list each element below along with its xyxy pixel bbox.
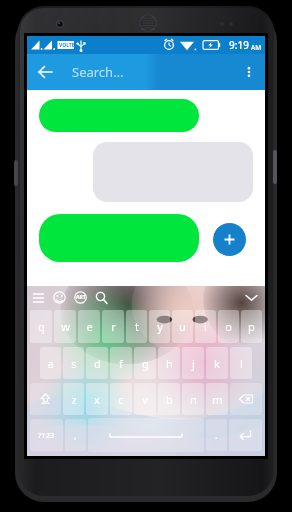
button[interactable]: Space — [88, 418, 204, 452]
button[interactable]: s — [63, 347, 84, 379]
button[interactable]: More options — [236, 59, 262, 85]
staticText: w — [61, 319, 70, 334]
staticText: , — [74, 429, 77, 441]
button[interactable]: Enter — [229, 419, 262, 451]
button[interactable]: n — [182, 383, 204, 415]
button[interactable]: r — [102, 310, 124, 343]
button[interactable]: Search — [95, 291, 108, 304]
button[interactable]: h — [158, 347, 180, 379]
staticText: u — [179, 319, 186, 334]
button[interactable]: q — [30, 310, 52, 343]
button[interactable]: Backspace — [230, 383, 262, 415]
staticText: b — [166, 392, 173, 407]
button[interactable]: ART — [74, 291, 87, 304]
button[interactable]: z — [63, 383, 84, 415]
staticText: d — [94, 356, 101, 371]
staticText: s — [71, 356, 77, 371]
button[interactable] — [39, 214, 199, 262]
button[interactable]: w — [54, 310, 76, 343]
button[interactable]: u — [172, 310, 193, 343]
button[interactable]: c — [110, 383, 132, 415]
staticText: x — [94, 392, 100, 407]
button[interactable]: o — [218, 310, 239, 343]
staticText: r — [111, 319, 116, 334]
staticText: k — [214, 356, 220, 371]
staticText: ?123 — [38, 430, 55, 440]
staticText: e — [86, 319, 93, 334]
button[interactable]: g — [134, 347, 156, 379]
button[interactable] — [39, 99, 199, 132]
button[interactable]: f — [110, 347, 132, 379]
staticText: j — [192, 356, 195, 371]
staticText: ART — [76, 294, 86, 301]
staticText: v — [142, 392, 148, 407]
button[interactable]: x — [86, 383, 108, 415]
staticText: n — [190, 392, 197, 407]
button[interactable]: i — [195, 310, 216, 343]
staticText: Search… — [72, 63, 124, 81]
staticText: t — [135, 319, 139, 334]
staticText: VOLTE — [59, 42, 75, 49]
staticText: l — [240, 356, 243, 371]
button[interactable]: . — [206, 419, 227, 451]
button[interactable]: p — [241, 310, 262, 343]
button[interactable]: b — [158, 383, 180, 415]
button[interactable]: d — [86, 347, 108, 379]
button[interactable]: ?123 — [30, 419, 63, 451]
staticText: p — [248, 319, 255, 334]
staticText: g — [142, 356, 149, 371]
button[interactable]: , — [65, 419, 86, 451]
button[interactable]: l — [230, 347, 252, 379]
staticText: m — [212, 392, 223, 407]
button[interactable]: Emoji — [53, 291, 66, 304]
button[interactable]: m — [206, 383, 228, 415]
button[interactable]: Menu — [32, 291, 45, 304]
button[interactable]: a — [40, 347, 61, 379]
staticText: y — [157, 319, 163, 334]
button[interactable]: New message — [213, 223, 246, 256]
staticText: a — [47, 356, 54, 371]
button[interactable]: j — [182, 347, 204, 379]
staticText: o — [225, 319, 232, 334]
button[interactable]: k — [206, 347, 228, 379]
staticText: c — [118, 392, 124, 407]
staticText: . — [215, 429, 218, 441]
staticText: i — [204, 319, 207, 334]
button[interactable]: Shift — [30, 383, 61, 415]
button[interactable]: e — [78, 310, 100, 343]
button[interactable]: Hide keyboard — [243, 289, 259, 305]
staticText: z — [71, 392, 77, 407]
button[interactable]: y — [149, 310, 170, 343]
button[interactable]: t — [126, 310, 147, 343]
button[interactable]: Back — [31, 58, 59, 86]
button[interactable]: v — [134, 383, 156, 415]
staticText: q — [38, 319, 45, 334]
button[interactable] — [93, 142, 253, 202]
staticText: 9:19 — [229, 38, 249, 52]
staticText: f — [119, 356, 123, 371]
staticText: h — [166, 356, 173, 371]
staticText: AM — [251, 43, 262, 52]
